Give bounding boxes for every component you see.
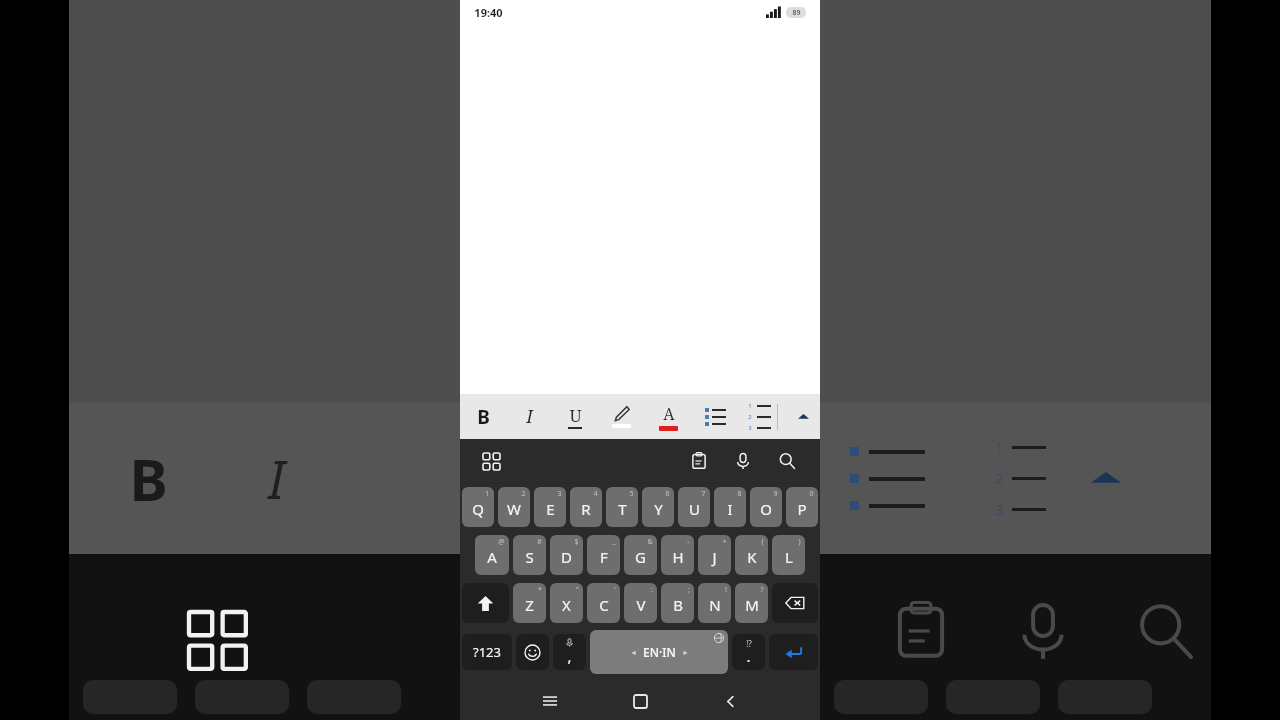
button[interactable]: Home [595,682,685,720]
button[interactable]: 3 [534,487,566,527]
button[interactable]: Search [770,444,804,478]
staticText: U [689,499,700,519]
staticText: 5 [629,489,634,499]
button[interactable]: ! [698,583,731,623]
staticText: B [477,404,490,430]
staticText: # [537,537,542,547]
button[interactable]: Collapse toolbar [786,394,820,439]
button[interactable]: Symbols [462,634,512,670]
staticText: I [268,443,285,514]
button[interactable]: Italic [506,394,552,439]
button[interactable]: 2 [498,487,530,527]
button[interactable]: ( [735,535,768,575]
button[interactable]: Bold [460,394,506,439]
staticText: M [745,595,759,615]
button[interactable]: 8 [714,487,746,527]
button[interactable]: Text color [645,394,692,439]
staticText: EN·IN [643,644,676,660]
staticText: . [746,646,751,666]
staticText: 89 [792,8,801,18]
button[interactable]: Back [685,682,775,720]
staticText: ' [614,585,616,595]
button[interactable]: : [624,583,657,623]
staticText: 9 [773,489,778,499]
staticText: ▸ [683,648,688,657]
button[interactable]: Voice input [726,444,760,478]
staticText: 19:40 [474,5,503,20]
button[interactable]: Shift [462,583,509,623]
button[interactable]: Enter [769,634,818,670]
staticText: O [760,499,772,519]
staticText: ; [688,585,690,595]
staticText: E [546,499,555,519]
button[interactable]: ; [661,583,694,623]
button[interactable]: + [698,535,731,575]
staticText: I [727,499,733,519]
staticText: S [525,547,534,567]
button[interactable]: _ [587,535,620,575]
staticText: 3 [557,489,562,499]
staticText: P [797,499,807,519]
staticText: 3 [995,500,1004,519]
staticText: L [785,547,793,567]
button[interactable]: Bulleted list [692,394,739,439]
staticText: X [562,595,571,615]
button[interactable]: 9 [750,487,782,527]
button[interactable]: - [661,535,694,575]
button[interactable]: Menu [476,446,506,476]
staticText: ( [761,537,764,547]
staticText: B [129,439,168,518]
staticText: A [487,547,497,567]
button[interactable]: & [624,535,657,575]
button[interactable]: 5 [606,487,638,527]
button[interactable]: 0 [786,487,818,527]
button[interactable]: 7 [678,487,710,527]
button[interactable]: Comma [553,634,586,670]
staticText: T [618,499,627,519]
staticText: ?123 [473,643,501,661]
button[interactable]: Numbered list [739,394,786,439]
button[interactable]: 1 [462,487,494,527]
button[interactable]: * [513,583,546,623]
button[interactable]: Emoji [516,634,549,670]
staticText: 0 [809,489,814,499]
button[interactable]: Recents [505,682,595,720]
button[interactable]: Underline [552,394,598,439]
button[interactable]: # [513,535,546,575]
staticText: ? [760,585,764,595]
staticText: H [672,547,684,567]
staticText: 2 [995,469,1004,488]
staticText: R [581,499,591,519]
button[interactable]: Clipboard [682,444,716,478]
staticText: , [567,646,572,666]
button[interactable]: Space [590,630,728,674]
staticText: @ [498,537,505,547]
button[interactable]: $ [550,535,583,575]
button[interactable]: Period [732,634,765,670]
button[interactable]: ' [587,583,620,623]
staticText: Y [654,499,663,519]
button[interactable]: Highlight [598,394,645,439]
staticText: J [712,547,717,567]
staticText: Q [472,499,484,519]
staticText: 2 [748,413,752,421]
staticText: 2 [521,489,526,499]
staticText: 3 [748,424,752,432]
staticText: ◂ [631,648,636,657]
staticText: V [636,595,646,615]
staticText: 7 [701,489,706,499]
staticText: " [576,585,579,595]
button[interactable]: 6 [642,487,674,527]
staticText: 1 [485,489,490,499]
button[interactable]: " [550,583,583,623]
staticText: _ [612,537,616,547]
button[interactable]: ) [772,535,805,575]
button[interactable]: 4 [570,487,602,527]
button[interactable]: @ [475,535,509,575]
staticText: 1 [995,438,1004,457]
staticText: * [538,585,542,595]
staticText: Z [525,595,534,615]
staticText: F [600,547,608,567]
button[interactable]: Backspace [772,583,818,623]
button[interactable]: ? [735,583,768,623]
